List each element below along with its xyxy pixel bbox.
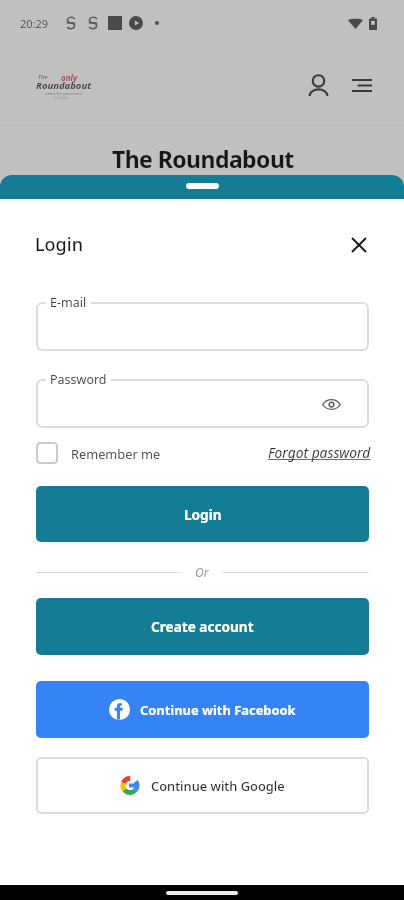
button[interactable] [36, 302, 369, 351]
staticText: The Roundabout [112, 143, 294, 174]
staticText: E-mail [50, 294, 87, 311]
button[interactable]: Forgot password [268, 443, 371, 462]
button[interactable] [36, 379, 369, 428]
staticText: where life goes round [45, 91, 82, 96]
button[interactable]: Remember me [36, 441, 161, 465]
button[interactable]: Login [36, 486, 369, 542]
staticText: The [38, 73, 48, 81]
staticText: only [61, 72, 78, 83]
staticText: Login [35, 232, 83, 257]
button[interactable]: Create account [36, 598, 369, 655]
button[interactable]: Show password [319, 392, 343, 416]
staticText: Password [50, 371, 107, 388]
staticText: in circles [54, 95, 69, 100]
staticText: Continue with Facebook [140, 701, 296, 719]
button[interactable]: Close [343, 229, 375, 261]
staticText: Roundabout [36, 79, 92, 92]
button[interactable]: Account [303, 70, 334, 101]
button[interactable]: Continue with Facebook [36, 681, 369, 738]
staticText: Remember me [71, 445, 161, 462]
button[interactable]: Continue with Google [36, 757, 369, 814]
button[interactable]: Menu [346, 70, 377, 101]
staticText: Login [184, 505, 222, 524]
staticText: Or [195, 564, 209, 580]
staticText: Create account [151, 617, 254, 636]
staticText: Continue with Google [151, 777, 285, 795]
staticText: 20:29 [20, 16, 49, 31]
